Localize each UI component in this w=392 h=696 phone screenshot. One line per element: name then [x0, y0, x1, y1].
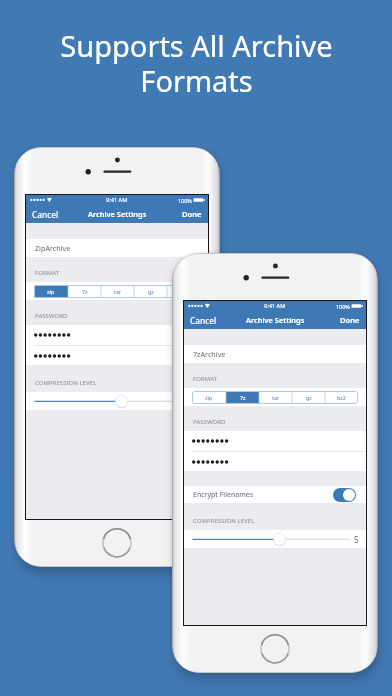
staticText: 7zArchive: [193, 349, 226, 359]
button[interactable]: zip: [192, 391, 226, 404]
button[interactable]: ZipArchive: [26, 239, 208, 257]
staticText: Cancel: [32, 209, 59, 220]
staticText: Done: [182, 209, 202, 219]
staticText: 100%: [178, 197, 192, 204]
staticText: tar: [272, 394, 280, 401]
button[interactable]: Cancel: [26, 205, 65, 223]
button[interactable]: 7z: [226, 391, 259, 404]
button[interactable]: Cancel: [184, 311, 223, 329]
staticText: gz: [306, 394, 312, 401]
staticText: tar: [114, 288, 122, 295]
staticText: FORMAT: [35, 269, 60, 277]
staticText: ZipArchive: [35, 243, 71, 253]
button[interactable]: Done: [176, 205, 208, 223]
staticText: PASSWORD: [193, 418, 226, 426]
staticText: 100%: [336, 303, 350, 310]
staticText: bz2: [337, 394, 346, 401]
button[interactable]: gz: [134, 285, 167, 298]
button[interactable]: tar: [101, 285, 134, 298]
staticText: COMPRESSION LEVEL: [35, 379, 97, 387]
staticText: Encrypt Filenames: [193, 490, 253, 500]
staticText: 7z: [240, 394, 246, 401]
staticText: Archive Settings: [88, 209, 147, 219]
button[interactable]: 7z: [68, 285, 101, 298]
other: Encrypt filenames toggle: [333, 488, 356, 502]
button[interactable]: [26, 392, 208, 410]
button[interactable]: 7zArchive: [184, 345, 366, 363]
button[interactable]: [26, 346, 208, 365]
button[interactable]: [184, 530, 366, 548]
button[interactable]: zip: [34, 285, 68, 298]
staticText: zip: [47, 288, 55, 295]
staticText: 5: [354, 534, 359, 545]
button[interactable]: Encrypt Filenames: [184, 486, 366, 503]
staticText: Archive Settings: [246, 315, 305, 325]
staticText: 9:41 AM: [264, 302, 286, 310]
staticText: FORMAT: [193, 375, 218, 383]
staticText: Formats: [140, 61, 253, 100]
button[interactable]: bz2: [167, 285, 200, 298]
staticText: COMPRESSION LEVEL: [193, 517, 255, 525]
staticText: Cancel: [190, 315, 217, 326]
staticText: zip: [205, 394, 213, 401]
button[interactable]: bz2: [325, 391, 358, 404]
staticText: PASSWORD: [35, 312, 68, 320]
button[interactable]: [184, 452, 366, 471]
button[interactable]: [26, 325, 208, 345]
staticText: 9:41 AM: [106, 196, 128, 204]
staticText: gz: [148, 288, 154, 295]
button[interactable]: [184, 431, 366, 451]
button[interactable]: Done: [334, 311, 366, 329]
button[interactable]: tar: [259, 391, 292, 404]
staticText: Done: [340, 315, 360, 325]
staticText: 7z: [82, 288, 88, 295]
staticText: Supports All Archive: [60, 26, 333, 65]
button[interactable]: gz: [292, 391, 325, 404]
